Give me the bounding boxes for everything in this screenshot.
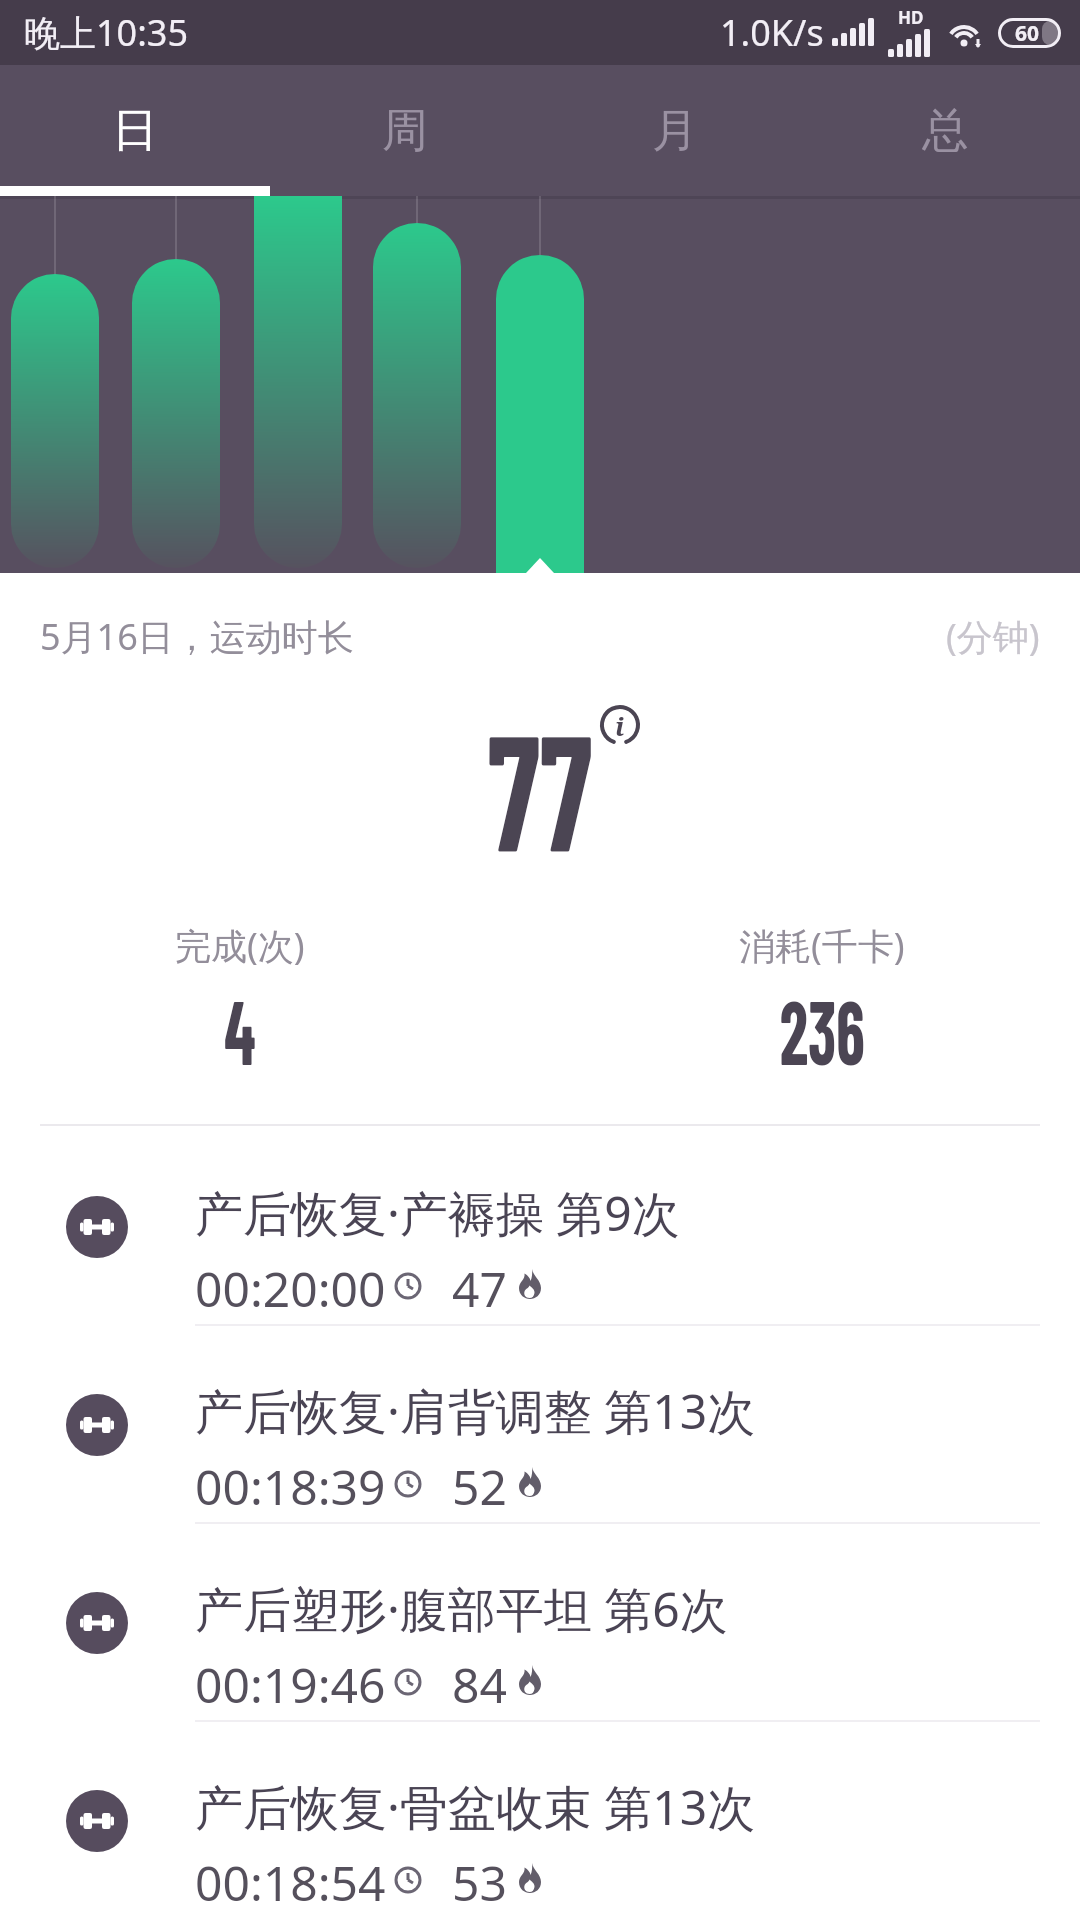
button[interactable]: 产后恢复·肩背调整 第13次 [0, 1326, 1080, 1524]
button[interactable]: 产后恢复·骨盆收束 第13次 [0, 1722, 1080, 1920]
staticText: 月 [652, 102, 698, 160]
staticText: 日 [112, 102, 158, 160]
staticText: 00:18:54 [195, 1850, 386, 1906]
staticText: (分钟) [946, 612, 1040, 661]
button[interactable]: 日 [0, 65, 270, 196]
button[interactable]: i [600, 705, 640, 745]
staticText: 47 [452, 1256, 507, 1312]
staticText: 4 [224, 975, 256, 1075]
staticText: 60 [1015, 19, 1040, 48]
staticText: 产后恢复·产褥操 第9次 [195, 1180, 680, 1246]
staticText: 84 [452, 1652, 507, 1708]
staticText: 53 [452, 1850, 507, 1906]
button[interactable]: 产后恢复·产褥操 第9次 [0, 1128, 1080, 1326]
button[interactable]: 月 [540, 65, 810, 196]
staticText: 00:19:46 [195, 1652, 386, 1708]
staticText: 消耗(千卡) [739, 921, 905, 970]
button[interactable]: 产后塑形·腹部平坦 第6次 [0, 1524, 1080, 1722]
staticText: 236 [780, 975, 865, 1075]
button[interactable]: 总 [810, 65, 1080, 196]
staticText: 产后恢复·骨盆收束 第13次 [195, 1774, 756, 1840]
staticText: 77 [488, 689, 592, 859]
staticText: i [615, 708, 625, 743]
staticText: 52 [452, 1454, 507, 1510]
staticText: 周 [382, 102, 428, 160]
staticText: 产后恢复·肩背调整 第13次 [195, 1378, 756, 1444]
staticText: 产后塑形·腹部平坦 第6次 [195, 1576, 728, 1642]
staticText: 总 [922, 102, 968, 160]
staticText: 5月16日，运动时长 [40, 612, 354, 661]
staticText: 00:20:00 [195, 1256, 386, 1312]
staticText: 1.0K/s [720, 8, 824, 57]
staticText: 晚上10:35 [24, 8, 189, 57]
staticText: HD [898, 6, 924, 29]
button[interactable]: 周 [270, 65, 540, 196]
staticText: 00:18:39 [195, 1454, 386, 1510]
staticText: 完成(次) [175, 921, 305, 970]
